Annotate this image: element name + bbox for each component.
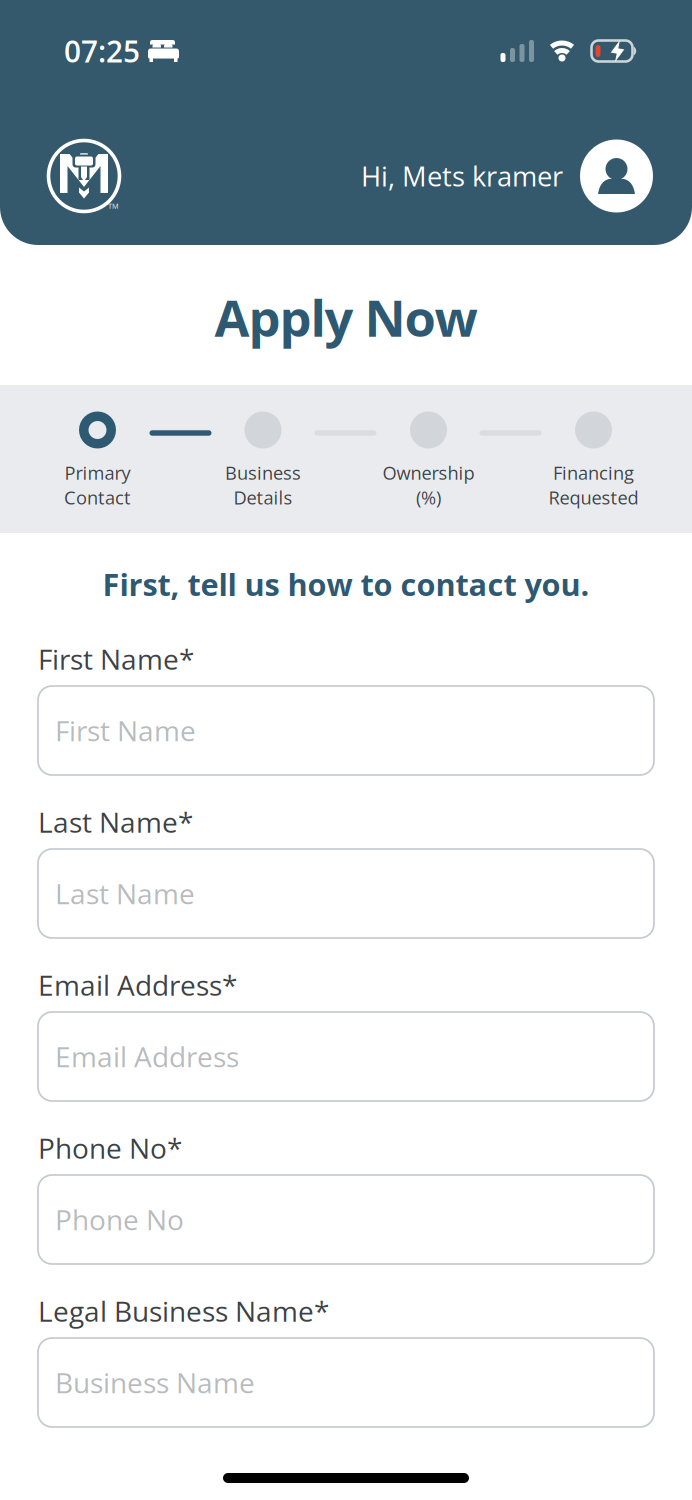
staticText: Phone No: [55, 1200, 184, 1238]
button[interactable]: First Name: [38, 686, 654, 775]
staticText: Business Name: [55, 1363, 255, 1401]
staticText: Apply Now: [214, 282, 477, 351]
staticText: First Name: [55, 711, 196, 749]
staticText: Details: [233, 485, 292, 510]
staticText: 07:25: [64, 31, 140, 71]
staticText: Legal Business Name*: [38, 1292, 329, 1330]
staticText: Hi, Mets kramer: [361, 157, 563, 195]
staticText: Last Name*: [38, 803, 193, 841]
staticText: First, tell us how to contact you.: [102, 563, 589, 605]
staticText: First Name*: [38, 640, 194, 678]
button[interactable]: Home: [46, 138, 122, 214]
staticText: Contact: [64, 485, 131, 510]
staticText: Ownership: [382, 460, 474, 485]
staticText: Requested: [548, 485, 638, 510]
staticText: Primary: [64, 460, 130, 485]
staticText: Financing: [553, 460, 634, 485]
staticText: TM: [108, 201, 119, 211]
button[interactable]: Profile: [580, 139, 653, 212]
button[interactable]: Email Address: [38, 1012, 654, 1101]
staticText: Email Address*: [38, 966, 237, 1004]
button[interactable]: Last Name: [38, 849, 654, 938]
staticText: Email Address: [55, 1037, 239, 1075]
staticText: Last Name: [55, 874, 195, 912]
button[interactable]: Business Name: [38, 1338, 654, 1427]
staticText: (%): [416, 485, 441, 510]
staticText: Phone No*: [38, 1129, 182, 1167]
button[interactable]: Phone No: [38, 1175, 654, 1264]
staticText: Business: [225, 460, 301, 485]
